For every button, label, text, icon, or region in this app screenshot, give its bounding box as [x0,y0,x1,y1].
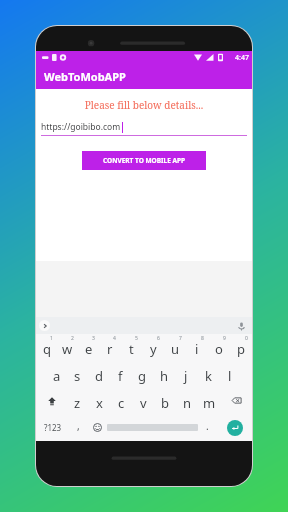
staticText: 8 [201,335,204,342]
staticText: 2 [71,335,74,342]
staticText: t [129,340,134,358]
button[interactable]: 5 [120,334,142,360]
button[interactable]: 2 [57,334,78,360]
staticText: p [237,340,245,358]
staticText: 1 [50,335,53,342]
button[interactable]: k [197,360,219,387]
button[interactable]: Emoji [88,414,107,441]
staticText: s [74,367,81,385]
button[interactable]: . [198,414,217,441]
button[interactable]: m [198,387,220,414]
button[interactable]: , [69,414,88,441]
staticText: z [74,394,81,412]
button[interactable]: d [88,360,109,387]
staticText: 4:47 [235,53,249,63]
button[interactable]: Expand suggestions [39,320,50,331]
button[interactable]: n [176,387,198,414]
staticText: y [150,340,157,358]
button[interactable]: x [88,387,110,414]
staticText: q [43,340,51,358]
button[interactable]: 8 [186,334,208,360]
button[interactable]: Space [107,419,198,436]
staticText: j [184,367,188,385]
staticText: , [77,419,80,433]
button[interactable]: g [131,360,153,387]
button[interactable]: https://goibibo.com [41,121,247,136]
button[interactable]: 3 [78,334,99,360]
button[interactable]: Voice input [235,320,247,332]
staticText: i [195,340,199,358]
staticText: Please fill below details... [36,98,252,112]
staticText: d [95,367,103,385]
button[interactable]: 7 [164,334,186,360]
staticText: a [53,367,61,385]
staticText: u [171,340,180,358]
button[interactable]: Backspace [220,387,252,414]
button[interactable]: Enter [227,420,243,436]
staticText: k [205,367,212,385]
staticText: 4 [113,335,116,342]
staticText: e [85,340,93,358]
button[interactable]: j [175,360,197,387]
button[interactable]: l [219,360,241,387]
button[interactable]: 6 [142,334,164,360]
staticText: m [203,394,216,412]
button[interactable]: 0 [230,334,252,360]
button[interactable]: s [67,360,88,387]
button[interactable]: c [110,387,132,414]
staticText: b [161,394,169,412]
staticText: f [118,367,123,385]
staticText: 9 [223,335,226,342]
staticText: 6 [157,335,160,342]
staticText: o [215,340,223,358]
staticText: r [107,340,113,358]
button[interactable]: z [67,387,88,414]
button[interactable]: f [109,360,131,387]
staticText: . [206,419,209,433]
button[interactable]: 4 [99,334,120,360]
button[interactable]: v [132,387,154,414]
button[interactable]: Shift [36,387,67,414]
staticText: WebToMobAPP [44,69,126,84]
button[interactable]: h [153,360,175,387]
staticText: ?123 [44,422,62,433]
staticText: n [183,394,192,412]
staticText: 5 [135,335,138,342]
staticText: l [228,367,232,385]
staticText: h [160,367,169,385]
button[interactable]: ?123 [36,414,69,441]
button[interactable]: 1 [36,334,57,360]
button[interactable]: b [154,387,176,414]
staticText: x [96,394,103,412]
staticText: g [138,367,146,385]
staticText: 0 [245,335,248,342]
staticText: 7 [179,335,182,342]
button[interactable]: a [46,360,67,387]
staticText: c [118,394,125,412]
staticText: 3 [92,335,95,342]
staticText: w [62,340,73,358]
button[interactable]: CONVERT TO MOBILE APP [82,151,206,170]
button[interactable]: 9 [208,334,230,360]
staticText: CONVERT TO MOBILE APP [103,156,186,165]
staticText: https://goibibo.com [41,121,121,133]
staticText: v [140,394,147,412]
